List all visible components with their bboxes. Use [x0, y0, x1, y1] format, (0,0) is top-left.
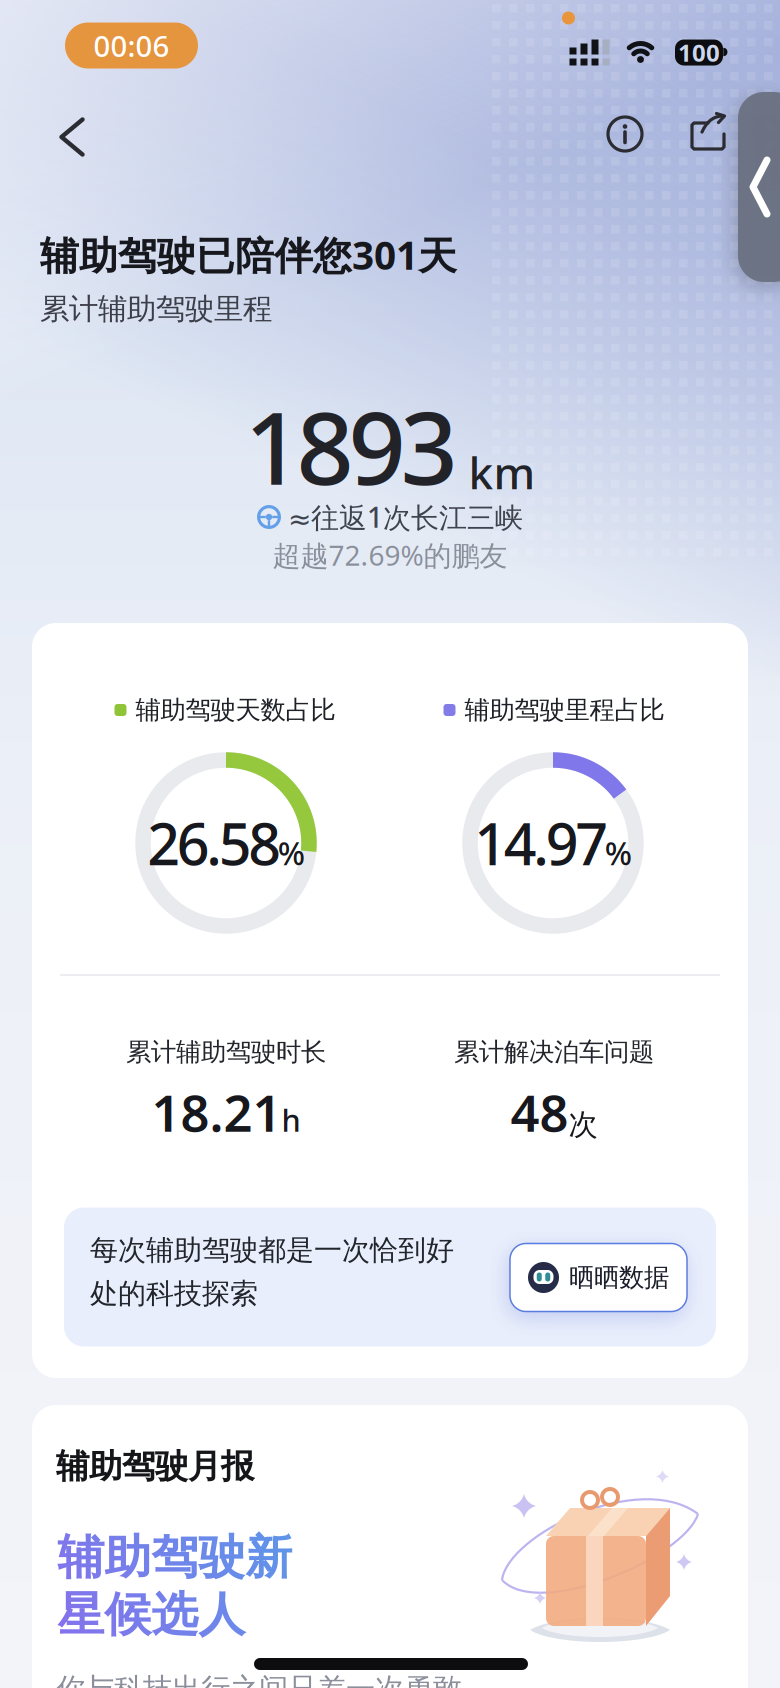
staticText: 处的科技探索: [90, 1276, 258, 1311]
staticText: 48次: [510, 1078, 597, 1146]
button[interactable]: Share: [688, 113, 728, 153]
staticText: 晒晒数据: [569, 1262, 669, 1293]
staticText: 你与科技出行之间只差一次勇敢: [56, 1671, 462, 1688]
button[interactable]: Info: [606, 115, 644, 153]
staticText: 辅助驾驶里程占比: [464, 694, 664, 725]
staticText: 辅助驾驶天数占比: [135, 694, 335, 725]
button[interactable]: 晒晒数据: [510, 1243, 687, 1311]
staticText: 每次辅助驾驶都是一次恰到好: [90, 1233, 454, 1267]
staticText: 辅助驾驶月报: [56, 1446, 254, 1487]
staticText: ≈往返1次长江三峡: [288, 498, 523, 536]
staticText: 累计解决泊车问题: [454, 1036, 654, 1067]
staticText: 辅助驾驶已陪伴您301天: [40, 229, 457, 280]
staticText: 累计辅助驾驶里程: [40, 291, 272, 327]
button[interactable]: Back: [47, 105, 96, 168]
staticText: 1893: [244, 380, 457, 512]
staticText: km: [468, 443, 535, 501]
button[interactable]: Open side panel: [738, 92, 780, 282]
staticText: 100: [678, 37, 720, 68]
staticText: 00:06: [93, 26, 169, 65]
staticText: 26.58%: [147, 805, 305, 881]
staticText: 超越72.69%的鹏友: [272, 536, 507, 574]
staticText: 累计辅助驾驶时长: [126, 1036, 326, 1067]
button[interactable]: 辅助驾驶月报: [32, 1405, 748, 1688]
staticText: 18.21h: [151, 1078, 300, 1146]
staticText: 14.97%: [474, 805, 632, 881]
